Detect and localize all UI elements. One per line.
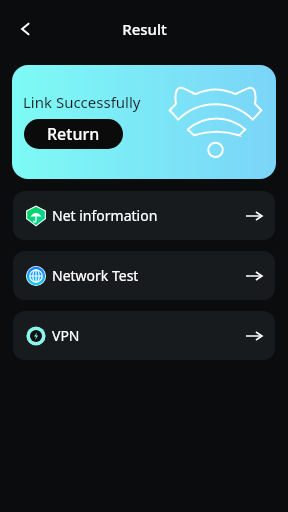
staticText: Result [122,19,167,39]
staticText: Return [47,123,100,145]
button[interactable]: VPN [13,311,275,360]
staticText: Link Successfully [23,92,141,112]
staticText: Net information [52,206,158,225]
button[interactable]: Back [12,15,40,43]
button[interactable]: Network Test [13,251,275,300]
staticText: VPN [52,326,80,345]
staticText: Network Test [52,266,139,285]
button[interactable]: Net information [13,191,275,240]
button[interactable]: Return [24,119,123,149]
